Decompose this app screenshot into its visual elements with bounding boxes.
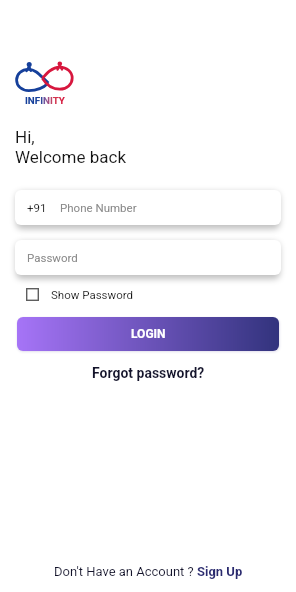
- staticText: Phone Number: [60, 201, 137, 214]
- button[interactable]: Password: [15, 240, 281, 275]
- button[interactable]: +91: [15, 190, 281, 225]
- staticText: LOGIN: [131, 327, 166, 341]
- button[interactable]: Show Password: [26, 287, 134, 302]
- staticText: Hi,: [15, 127, 35, 147]
- button[interactable]: LOGIN: [17, 317, 279, 351]
- staticText: Password: [27, 251, 78, 264]
- staticText: +91: [27, 201, 47, 214]
- staticText: INFINITY: [25, 95, 65, 106]
- button[interactable]: Don't Have an Account ? Sign Up: [50, 562, 247, 581]
- other: Infinity logo: [16, 60, 76, 94]
- button[interactable]: Forgot password?: [88, 363, 209, 383]
- staticText: Welcome back: [15, 147, 127, 167]
- staticText: Show Password: [51, 288, 134, 301]
